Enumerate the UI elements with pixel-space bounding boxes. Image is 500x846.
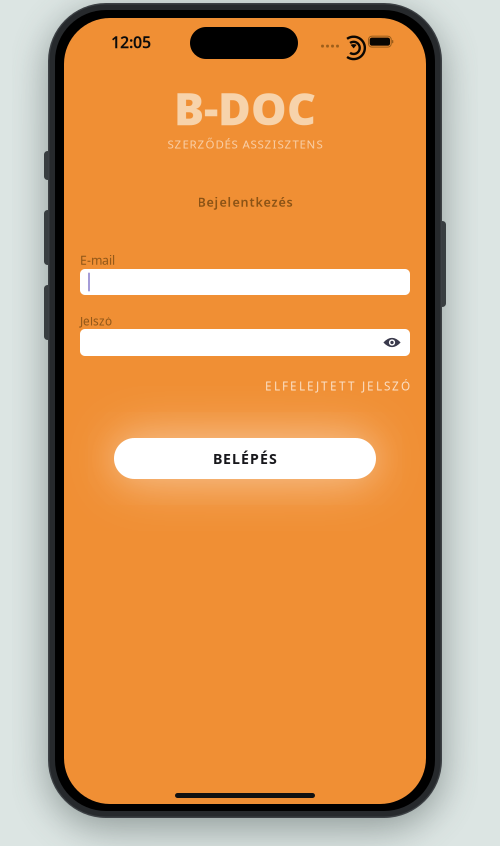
- staticText: B-DOC: [174, 78, 316, 138]
- button[interactable]: E L F E L E J T E T T J E L S Z Ó: [210, 378, 410, 394]
- button[interactable]: E-mail: [80, 269, 410, 295]
- staticText: B E L É P É S: [213, 449, 277, 468]
- button[interactable]: Show password: [383, 336, 401, 349]
- staticText: E-mail: [80, 252, 115, 268]
- staticText: S Z E R Z Ő D É S A S S Z I S Z T E N S: [167, 136, 322, 152]
- staticText: B e j e l e n t k e z é s: [197, 193, 292, 211]
- staticText: 12:05: [111, 31, 151, 53]
- button[interactable]: B E L É P É S: [114, 438, 376, 479]
- staticText: E L F E L E J T E T T J E L S Z Ó: [265, 378, 410, 394]
- staticText: Jelszó: [80, 313, 112, 329]
